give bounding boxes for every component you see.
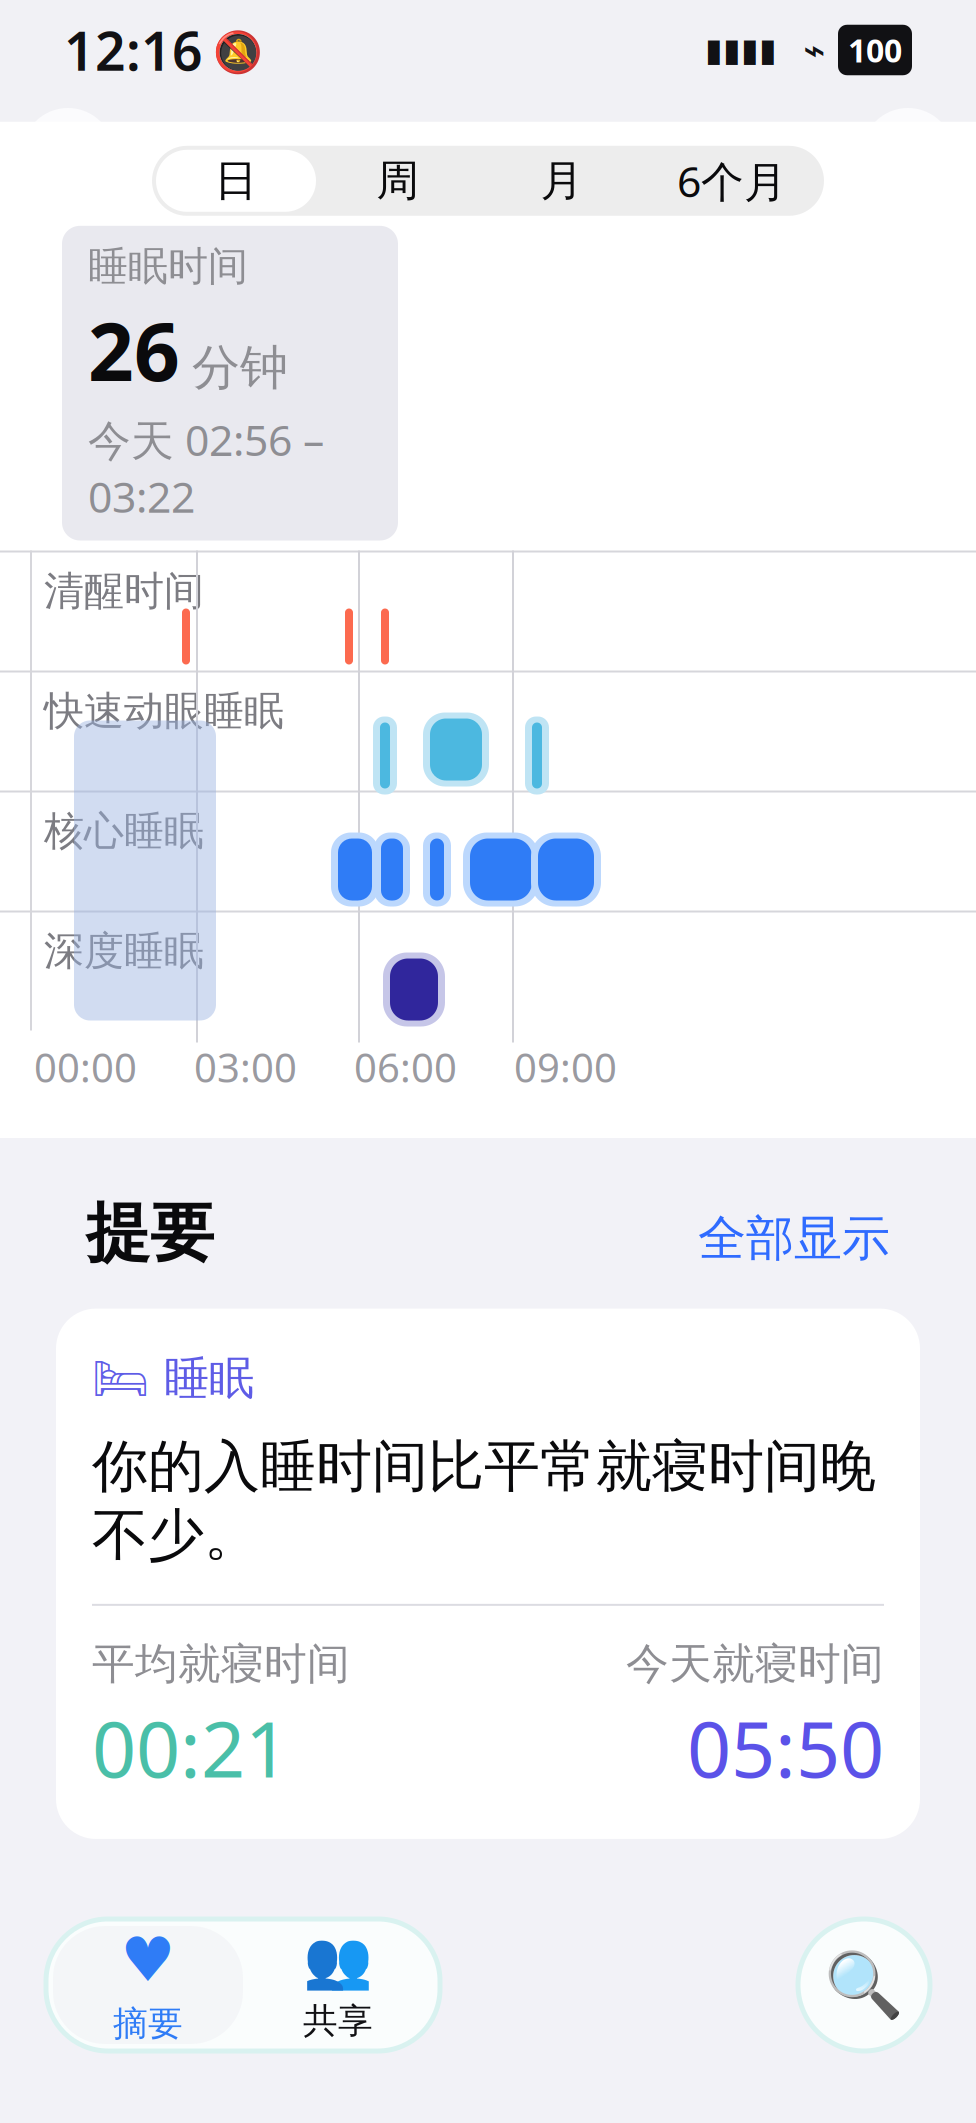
staticText: ♥ [120, 1925, 175, 1994]
staticText: 100 [848, 29, 902, 71]
staticText: 12:16 [64, 15, 203, 85]
staticText: ‹ [55, 99, 80, 201]
staticText: 今天 02:56 – 03:22 [88, 411, 324, 524]
staticText: 摘要 [113, 2002, 183, 2045]
staticText: 05:50 [687, 1696, 884, 1799]
staticText: 深度睡眠 [44, 926, 204, 976]
button[interactable]: 日 [156, 150, 316, 212]
staticText: 你的入睡时间比平常就寝时间晚不少。 [92, 1432, 876, 1570]
staticText: 🔕 [203, 23, 263, 76]
staticText: 分钟 [192, 338, 288, 397]
staticText: 睡眠时间 [88, 242, 248, 291]
button[interactable]: 添加数据 [862, 108, 954, 200]
staticText: 快速动眼睡眠 [44, 686, 284, 736]
staticText: 月 [540, 155, 583, 207]
staticText: 👥 [303, 1928, 373, 1992]
staticText: 睡眠 [164, 1351, 254, 1406]
button[interactable]: 显示更多睡眠数据 [0, 1116, 976, 1224]
button[interactable]: 月 [480, 150, 644, 212]
staticText: 00:21 [92, 1696, 289, 1799]
button[interactable]: 6个月 [644, 150, 820, 212]
staticText: 日 [214, 155, 257, 207]
button[interactable]: 🛏 [56, 1309, 920, 1839]
staticText: 平均就寝时间 [92, 1638, 350, 1690]
button[interactable]: 搜索 [798, 1919, 930, 2051]
staticText: 6个月 [677, 152, 787, 209]
staticText: 周 [376, 155, 419, 207]
staticText: 今天就寝时间 [626, 1638, 884, 1690]
staticText: 全部显示 [698, 1209, 890, 1268]
staticText: 🔍 [824, 1948, 904, 2021]
staticText: 26 [88, 297, 180, 403]
button[interactable]: 返回 [22, 108, 114, 200]
button[interactable]: 周 [316, 150, 480, 212]
staticText: 00:00 [34, 1040, 137, 1094]
staticText: 🛏 [92, 1353, 150, 1404]
button[interactable]: 👥 [243, 1926, 433, 2044]
staticText: 03:00 [194, 1040, 297, 1094]
staticText: 核心睡眠 [44, 806, 204, 856]
button[interactable]: 全部显示 [698, 1209, 890, 1268]
staticText: 睡眠 [437, 123, 539, 185]
staticText: ⌁ [777, 29, 838, 71]
staticText: 提要 [86, 1194, 214, 1273]
staticText: 清醒时间 [44, 566, 204, 616]
button[interactable]: ♥ [53, 1926, 243, 2044]
staticText: 共享 [303, 2000, 373, 2042]
staticText: 09:00 [514, 1040, 617, 1094]
staticText: 06:00 [354, 1040, 457, 1094]
staticText: ▮▮▮▮ [705, 32, 777, 68]
